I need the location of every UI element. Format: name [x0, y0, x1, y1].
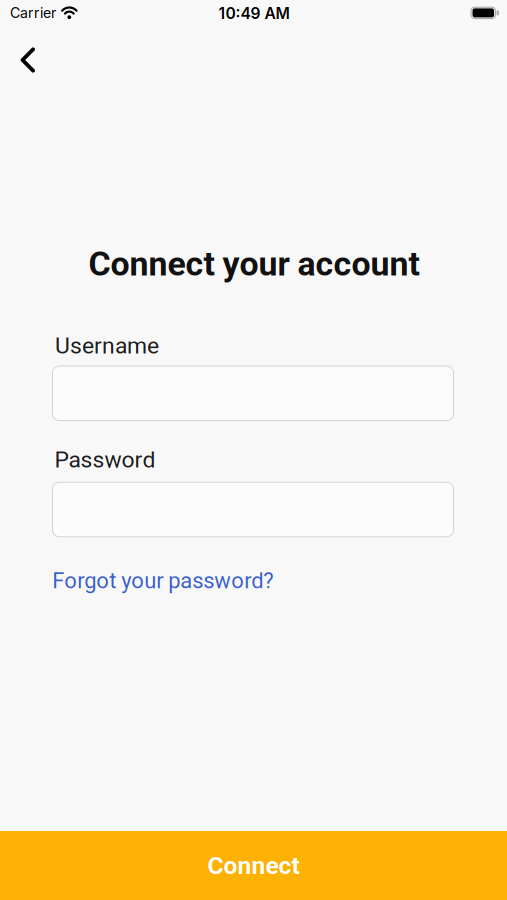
staticText: 10:49 AM	[218, 4, 289, 23]
staticText: Connect	[207, 851, 299, 880]
staticText: Forgot your password?	[52, 568, 273, 594]
staticText: Username	[55, 332, 159, 359]
staticText: Connect your account	[88, 244, 419, 284]
button[interactable]: Connect	[0, 831, 507, 900]
button[interactable]: Forgot your password?	[52, 564, 273, 598]
staticText: Password	[54, 446, 155, 473]
staticText: Carrier	[10, 4, 56, 21]
button[interactable]: Back	[10, 37, 45, 82]
